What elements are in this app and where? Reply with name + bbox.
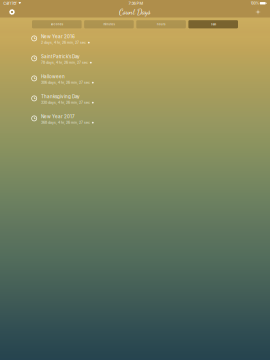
staticText: minutes xyxy=(103,23,114,26)
staticText: New Year 2016 xyxy=(41,34,75,39)
staticText: Halloween xyxy=(41,74,65,79)
staticText: hours xyxy=(157,23,165,26)
staticText: New Year 2017 xyxy=(41,114,75,119)
button[interactable]: Halloween xyxy=(0,68,270,88)
staticText: 2 days, 4 hr, 26 min, 27 sec xyxy=(41,41,86,45)
button[interactable]: seconds xyxy=(32,20,82,28)
button[interactable]: New Year 2016 xyxy=(0,28,270,48)
staticText: 7:36 PM xyxy=(128,1,143,6)
staticText: Count Days xyxy=(119,7,151,17)
staticText: 368 days, 4 hr, 26 min, 27 sec xyxy=(41,121,90,125)
staticText: 100% xyxy=(251,1,259,5)
staticText: 78 days, 4 hr, 26 min, 27 sec xyxy=(41,61,88,65)
staticText: Carrier xyxy=(3,1,17,6)
button[interactable]: hours xyxy=(136,20,186,28)
staticText: 306 days, 4 hr, 26 min, 27 sec xyxy=(41,81,90,85)
button[interactable]: Saint Patrick's Day xyxy=(0,48,270,68)
button[interactable]: Thanksgiving Day xyxy=(0,88,270,108)
button[interactable]: New Year 2017 xyxy=(0,108,270,128)
button[interactable]: minutes xyxy=(84,20,134,28)
button[interactable]: Settings xyxy=(4,6,20,17)
staticText: seconds xyxy=(51,23,63,26)
staticText: Saint Patrick's Day xyxy=(41,54,80,59)
staticText: 330 days, 4 hr, 26 min, 27 sec xyxy=(41,101,90,105)
staticText: days xyxy=(211,23,216,26)
staticText: Thanksgiving Day xyxy=(41,94,80,99)
button[interactable]: days xyxy=(188,20,238,28)
button[interactable]: Add countdown xyxy=(250,6,266,17)
